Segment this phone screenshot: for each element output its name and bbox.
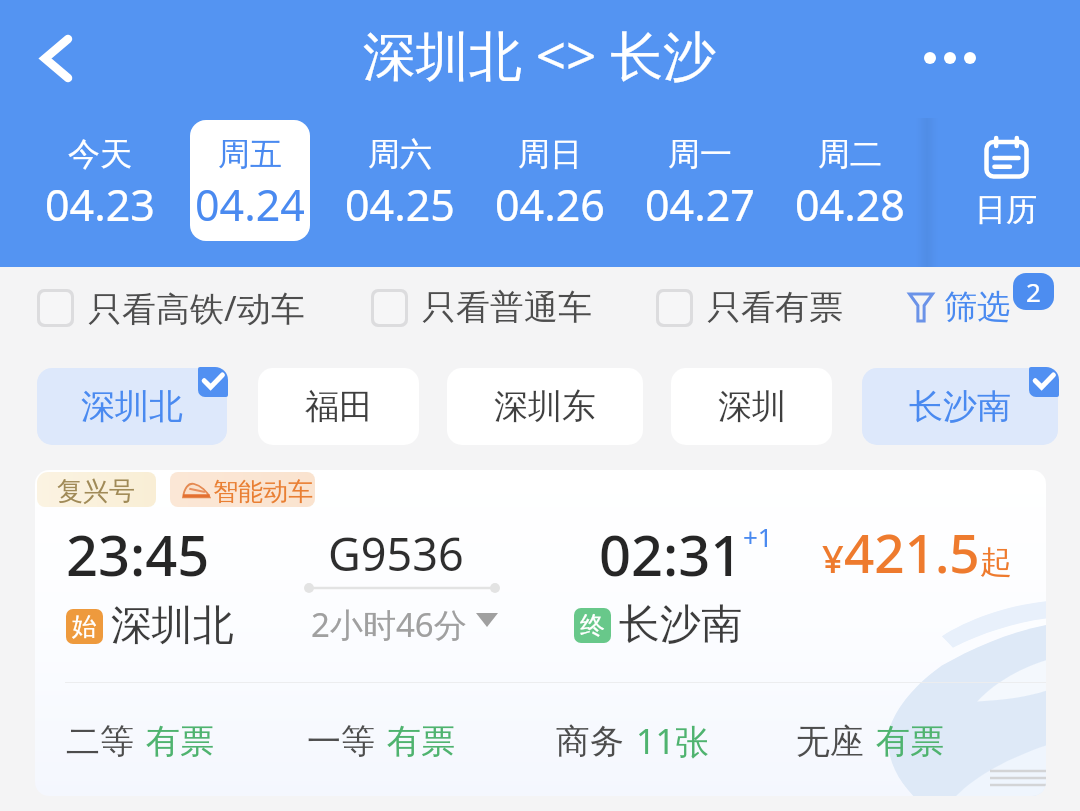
staticText: 今天 [68,134,132,174]
button[interactable]: 商务 [556,708,709,774]
staticText: 周五 [218,134,282,174]
staticText: 有票 [387,720,455,763]
staticText: 长沙南 [619,599,742,651]
button[interactable]: 周一 [625,120,775,244]
staticText: 只看普通车 [422,286,592,329]
button[interactable]: 深圳 [671,368,832,445]
button[interactable]: 复兴号 [35,470,1046,796]
staticText: 04.28 [795,175,905,234]
staticText: 周日 [518,134,582,174]
staticText: 筛选 [944,286,1010,328]
staticText: 始 [72,611,97,642]
button[interactable]: 筛选 [908,281,1010,333]
staticText: 周一 [668,134,732,174]
staticText: 商务 [556,720,624,763]
staticText: 04.27 [645,175,755,234]
staticText: 04.24 [195,175,305,234]
button[interactable]: 深圳东 [447,368,643,445]
button[interactable]: 只看高铁/动车 [37,263,305,352]
staticText: 二等 [66,720,134,763]
staticText: 起 [980,542,1012,582]
staticText: 智能动车 [213,476,313,507]
button[interactable]: 福田 [258,368,419,445]
staticText: 04.25 [345,175,455,234]
staticText: 深圳 [718,385,786,428]
staticText: 复兴号 [57,475,135,507]
staticText: 23:45 [66,516,210,592]
staticText: 421.5 [844,516,980,588]
button[interactable]: 日历 [935,120,1076,260]
staticText: 无座 [796,720,864,763]
button[interactable]: 周二 [775,120,925,244]
staticText: 深圳东 [494,385,596,428]
button[interactable]: 无座 [796,708,944,774]
button[interactable]: 深圳北 [37,368,227,445]
staticText: 周六 [368,134,432,174]
staticText: 04.23 [45,175,155,234]
staticText: 02:31 [599,516,743,592]
staticText: 只看有票 [707,286,843,329]
staticText: 深圳北 <> 长沙 [363,18,717,90]
button[interactable]: 今天 [25,120,175,244]
button[interactable]: 周五 [175,120,325,244]
staticText: 有票 [876,720,944,763]
staticText: 一等 [307,720,375,763]
staticText: +1 [743,519,773,554]
button[interactable]: 只看有票 [656,263,843,352]
staticText: G9536 [328,523,464,584]
button[interactable]: Back [16,14,96,102]
staticText: 2小时46分 [311,602,467,647]
button[interactable]: 一等 [307,708,455,774]
button[interactable]: 周日 [475,120,625,244]
staticText: 2 [1026,274,1041,309]
staticText: 终 [580,610,605,641]
button[interactable]: 二等 [66,708,214,774]
staticText: 日历 [975,190,1037,229]
button[interactable]: More options [910,14,998,102]
staticText: 福田 [305,385,373,428]
button[interactable]: 周六 [325,120,475,244]
button[interactable]: 只看普通车 [371,263,592,352]
staticText: 长沙南 [909,385,1011,428]
staticText: 只看高铁/动车 [88,285,305,331]
staticText: 有票 [146,720,214,763]
staticText: 周二 [818,134,882,174]
staticText: 04.26 [495,175,605,234]
staticText: 11张 [636,718,709,764]
staticText: ¥ [822,532,844,584]
staticText: 深圳北 [81,385,183,428]
staticText: 深圳北 [111,600,234,652]
button[interactable]: 长沙南 [862,368,1058,445]
